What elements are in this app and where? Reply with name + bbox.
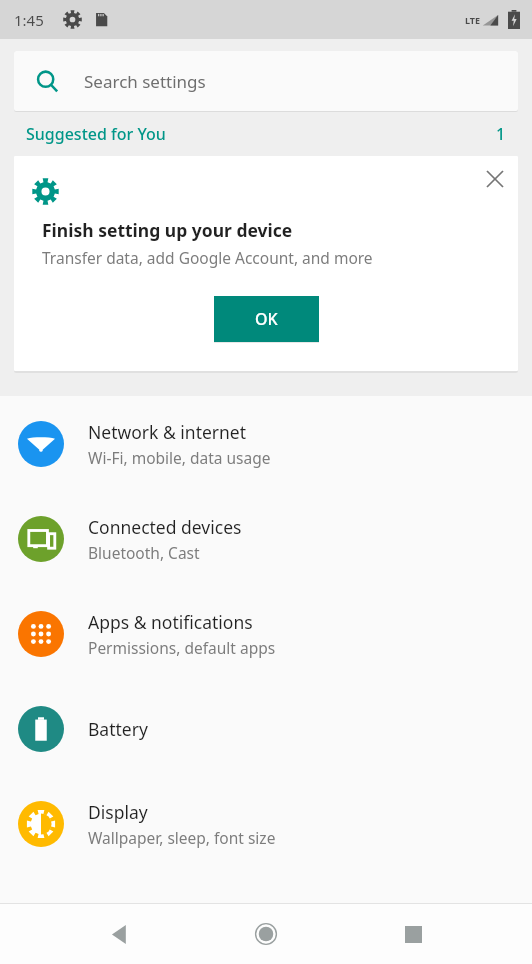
staticText: LTE (465, 14, 481, 26)
staticText: Search settings (84, 70, 206, 93)
button[interactable]: Dismiss suggestion (478, 162, 512, 196)
button[interactable]: Connected devices (0, 491, 532, 586)
button[interactable]: OK (214, 296, 319, 342)
staticText: 1:45 (14, 10, 44, 30)
staticText: Network & internet (88, 420, 247, 444)
button[interactable]: Home (239, 907, 293, 961)
staticText: Display (88, 800, 148, 824)
staticText: Transfer data, add Google Account, and m… (42, 247, 373, 268)
staticText: Bluetooth, Cast (88, 542, 200, 563)
button[interactable]: Search settings (14, 51, 518, 111)
staticText: Wi-Fi, mobile, data usage (88, 447, 271, 468)
button[interactable]: Recent apps (386, 907, 440, 961)
staticText: Wallpaper, sleep, font size (88, 827, 276, 848)
staticText: Suggested for You (26, 123, 166, 145)
button[interactable]: Network & internet (0, 396, 532, 491)
button[interactable]: Back (93, 907, 147, 961)
staticText: Connected devices (88, 515, 242, 539)
staticText: 1 (496, 123, 506, 145)
button[interactable]: Apps & notifications (0, 586, 532, 681)
staticText: Battery (88, 717, 148, 741)
staticText: OK (255, 308, 278, 330)
button[interactable]: Battery (0, 681, 532, 776)
staticText: Finish setting up your device (42, 218, 293, 242)
staticText: Permissions, default apps (88, 637, 276, 658)
button[interactable]: Dismiss suggestion (14, 156, 518, 371)
staticText: Apps & notifications (88, 610, 253, 634)
button[interactable]: Display (0, 776, 532, 871)
